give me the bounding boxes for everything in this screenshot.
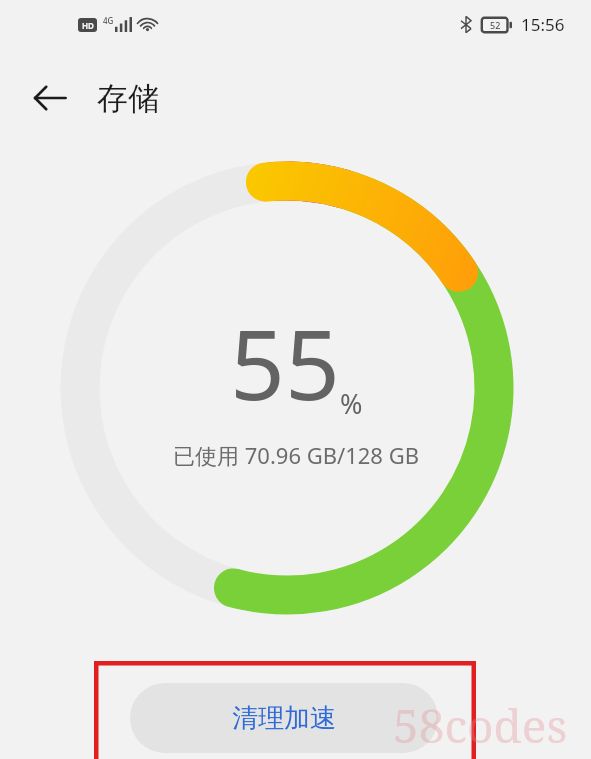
staticText: 已使用 70.96 GB/128 GB xyxy=(173,440,419,470)
button[interactable]: Back xyxy=(22,70,78,126)
staticText: 存储 xyxy=(97,79,159,118)
staticText: 58codes xyxy=(393,694,568,757)
button[interactable]: 清理加速 xyxy=(130,683,438,753)
staticText: % xyxy=(340,385,363,422)
staticText: 清理加速 xyxy=(232,702,336,735)
staticText: 4G xyxy=(103,15,114,26)
staticText: 52 xyxy=(490,19,501,31)
staticText: 55 xyxy=(230,297,340,428)
staticText: HD xyxy=(82,20,94,31)
staticText: 15:56 xyxy=(521,13,565,36)
